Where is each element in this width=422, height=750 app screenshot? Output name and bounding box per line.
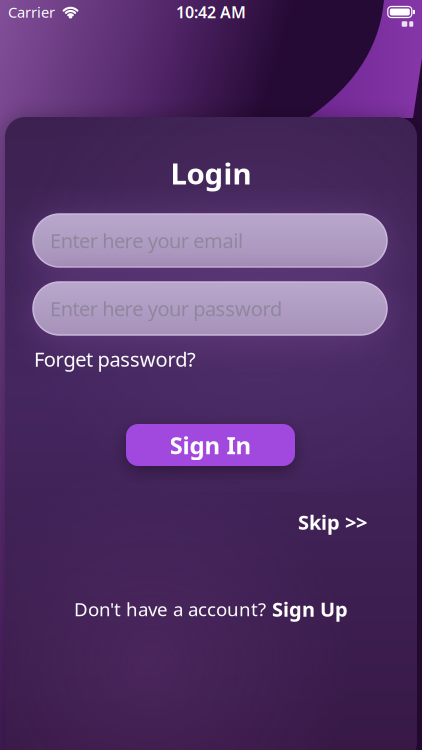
button[interactable]: Forget password?: [34, 346, 196, 372]
staticText: 10:42 AM: [176, 1, 246, 23]
button[interactable]: Sign In: [126, 424, 295, 466]
button[interactable]: Skip >>: [298, 509, 367, 535]
staticText: Enter here your email: [50, 227, 243, 254]
staticText: Forget password?: [34, 346, 196, 372]
staticText: Carrier: [8, 2, 55, 22]
staticText: Enter here your password: [50, 295, 282, 322]
staticText: Sign Up: [272, 596, 348, 622]
button[interactable]: Sign Up: [272, 596, 348, 622]
staticText: Login: [170, 153, 251, 192]
staticText: Don't have a account?: [74, 597, 266, 621]
textField[interactable]: [33, 293, 387, 323]
staticText: Skip >>: [298, 509, 367, 535]
button[interactable]: Enter here your password: [33, 282, 387, 335]
button[interactable]: Enter here your email: [33, 214, 387, 267]
textField[interactable]: [33, 225, 387, 255]
staticText: Sign In: [169, 429, 251, 461]
